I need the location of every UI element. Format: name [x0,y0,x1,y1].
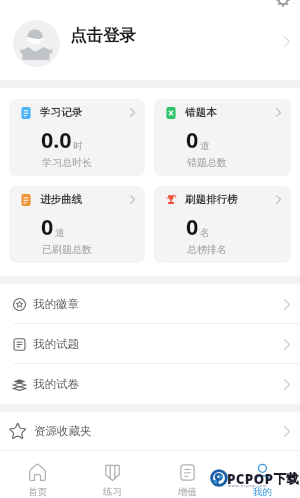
staticText: 已刷题总数 [42,243,92,256]
staticText: 0.0 [41,125,72,154]
button[interactable] [0,0,300,80]
staticText: 0 [41,212,54,241]
staticText: 道 [200,140,210,152]
staticText: 我的试卷 [33,377,79,391]
staticText: PCPOP [227,470,274,488]
staticText: 刷题排行榜 [185,193,238,206]
button[interactable]: 资源收藏夹 [0,412,300,450]
staticText: 下载 [274,471,299,487]
button[interactable]: 进步曲线 [9,186,145,263]
button[interactable]: 我的 [225,451,300,498]
button[interactable]: 我的徽章 [0,284,300,324]
staticText: 我的试题 [33,337,79,351]
button[interactable]: 练习 [75,451,150,498]
staticText: 名 [200,227,210,239]
button[interactable]: 错题本 [154,99,291,176]
staticText: 练习 [103,486,122,498]
staticText: 0 [186,125,199,154]
staticText: 道 [55,227,65,239]
button[interactable]: Open profile [278,32,296,50]
staticText: 点击登录 [70,25,136,46]
staticText: 学习总时长 [42,156,92,169]
staticText: 进步曲线 [40,193,82,206]
button[interactable]: 学习记录 [9,99,145,176]
staticText: 我的徽章 [33,297,79,311]
staticText: 总榜排名 [187,243,227,256]
other: Settings [276,0,290,7]
button[interactable]: 我的试题 [0,324,300,364]
button[interactable]: 我的试卷 [0,364,300,404]
button[interactable]: 刷题排行榜 [154,186,291,263]
staticText: 我的 [253,486,272,498]
staticText: www.pcpop.com [228,483,268,488]
staticText: 错题总数 [187,156,227,169]
button[interactable]: 增值 [150,451,225,498]
staticText: 资源收藏夹 [34,424,92,438]
staticText: 时 [73,140,83,152]
button[interactable]: 首页 [0,451,75,498]
staticText: 0 [186,212,199,241]
staticText: 错题本 [185,106,217,119]
staticText: 学习记录 [40,106,82,119]
staticText: 增值 [178,486,197,498]
staticText: 首页 [28,486,47,498]
